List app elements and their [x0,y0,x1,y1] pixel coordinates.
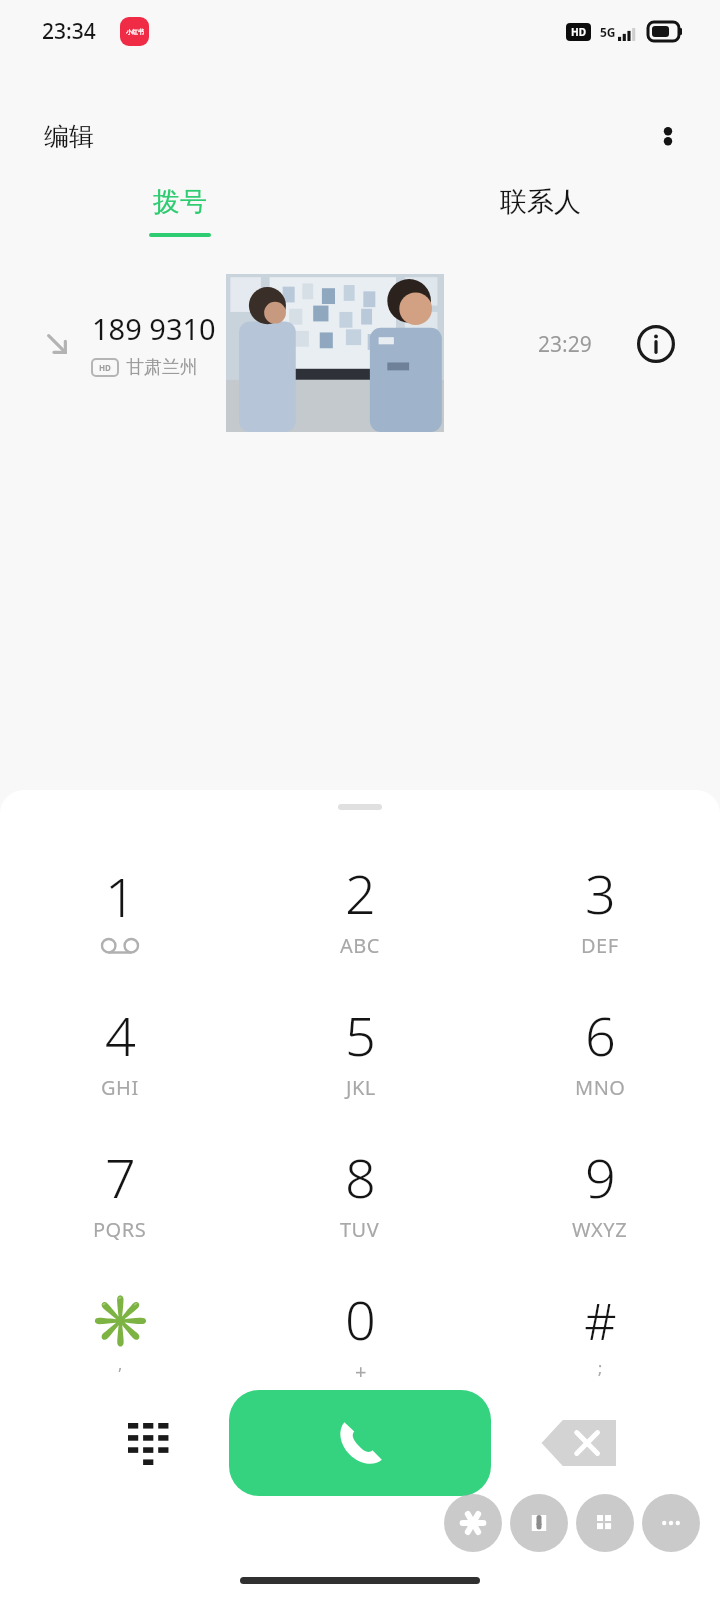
staticText: WXYZ [572,1216,628,1243]
staticText: 23:29 [538,330,592,359]
button[interactable]: 6 [480,978,720,1120]
button[interactable]: 联系人 [360,185,720,261]
staticText: 5G [600,24,616,40]
staticText: 4 [105,998,136,1072]
staticText: 23:34 [42,17,96,46]
button[interactable]: Call [229,1390,491,1496]
staticText: ABC [340,932,380,959]
staticText: GHI [101,1074,139,1101]
staticText: 9 [585,1140,616,1214]
staticText: TUV [340,1216,380,1243]
staticText: ✳ [89,1292,152,1351]
button[interactable]: 8 [240,1120,480,1262]
staticText: 7 [105,1140,136,1214]
button[interactable]: # [480,1262,720,1404]
button[interactable]: ✳ [0,1262,240,1404]
staticText: , [118,1353,123,1375]
staticText: 189 9310 [92,309,216,348]
button[interactable]: 3 [480,836,720,978]
button[interactable]: Call details [632,320,680,368]
button[interactable]: 0 [240,1262,480,1404]
staticText: DEF [581,932,619,959]
staticText: 拨号 [153,185,207,219]
button[interactable]: Apps [576,1494,634,1552]
button[interactable]: 189 9310 [0,296,720,392]
button[interactable]: Video preview [226,274,444,432]
button[interactable]: Backspace [540,1417,616,1469]
button[interactable]: 7 [0,1120,240,1262]
button[interactable]: 1 [0,836,240,978]
button[interactable]: Screenshot tools [444,1494,502,1552]
staticText: 0 [345,1282,376,1356]
staticText: + [355,1358,367,1385]
staticText: 联系人 [500,185,581,219]
button[interactable]: Hide keypad [112,1407,184,1479]
staticText: 甘肃兰州 [126,356,198,379]
staticText: 3 [585,856,616,930]
staticText: 5 [345,998,376,1072]
staticText: 小红书 [126,28,144,36]
staticText: 2 [345,856,376,930]
button[interactable]: 5 [240,978,480,1120]
staticText: 8 [345,1140,376,1214]
staticText: HD [99,362,111,373]
button[interactable]: 4 [0,978,240,1120]
button[interactable]: More options [646,114,690,158]
staticText: # [584,1287,617,1355]
staticText: MNO [575,1074,626,1101]
staticText: 6 [585,998,616,1072]
button[interactable]: 2 [240,836,480,978]
staticText: 1 [105,859,136,933]
staticText: HD [571,25,586,39]
button[interactable]: More [642,1494,700,1552]
staticText: JKL [346,1074,376,1101]
button[interactable]: 编辑 [44,121,94,152]
button[interactable]: 9 [480,1120,720,1262]
staticText: ; [598,1357,603,1379]
button[interactable]: Download [510,1494,568,1552]
button[interactable]: 拨号 [0,185,360,261]
staticText: PQRS [93,1216,147,1243]
